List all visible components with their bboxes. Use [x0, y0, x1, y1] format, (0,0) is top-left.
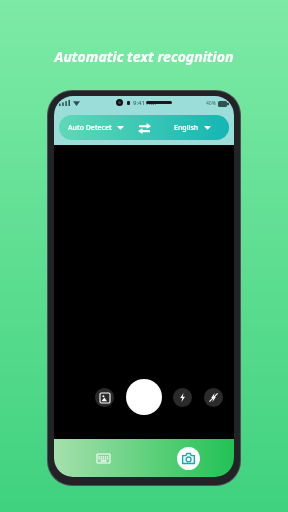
- button[interactable]: Flash off: [204, 388, 223, 407]
- button[interactable]: Gallery: [95, 388, 114, 407]
- button[interactable]: Keyboard input: [92, 447, 114, 469]
- staticText: Automatic text recognition: [0, 47, 288, 66]
- staticText: English: [174, 123, 199, 133]
- staticText: 40%: [206, 100, 216, 107]
- button[interactable]: Flash: [173, 388, 192, 407]
- button[interactable]: Camera: [177, 447, 200, 470]
- staticText: Auto Detecet: [68, 123, 112, 133]
- button[interactable]: Swap languages: [132, 116, 156, 140]
- button[interactable]: Capture: [126, 379, 162, 415]
- staticText: 9:41 AM: [133, 99, 156, 107]
- button[interactable]: Auto Detecet: [59, 115, 132, 140]
- button[interactable]: English: [156, 115, 229, 140]
